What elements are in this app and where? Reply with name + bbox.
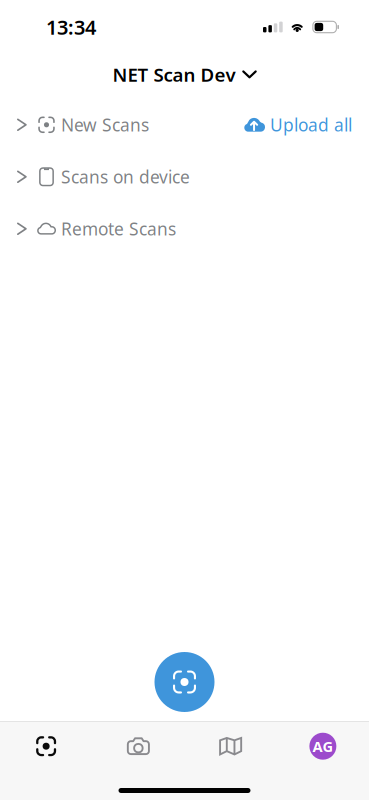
button[interactable]: New Scans	[0, 99, 149, 151]
button[interactable]: Camera	[92, 726, 184, 767]
staticText: Scans on device	[61, 165, 190, 188]
button[interactable]: Remote Scans	[0, 203, 369, 255]
staticText: New Scans	[61, 113, 149, 136]
button[interactable]: Map	[184, 726, 277, 767]
staticText: 13:34	[46, 14, 96, 40]
button[interactable]: NET Scan Dev	[112, 53, 256, 96]
button[interactable]: Scans on device	[0, 151, 369, 203]
staticText: AG	[312, 736, 333, 756]
button[interactable]: Upload all	[243, 99, 369, 151]
button[interactable]: Profile	[277, 726, 369, 767]
staticText: Remote Scans	[61, 217, 176, 240]
staticText: Upload all	[270, 113, 352, 136]
staticText: NET Scan Dev	[112, 62, 235, 87]
button[interactable]: Scan	[154, 652, 214, 712]
button[interactable]: Scans	[0, 726, 92, 767]
